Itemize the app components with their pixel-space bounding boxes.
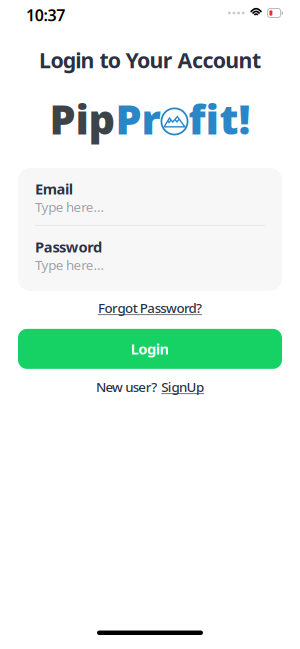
staticText: Pip — [49, 91, 115, 146]
staticText: Email — [35, 179, 73, 199]
staticText: 10:37 — [26, 4, 65, 26]
button[interactable]: Forgot Password? — [98, 302, 202, 314]
staticText: Password — [35, 237, 102, 257]
staticText: fit! — [188, 91, 250, 146]
staticText: Forgot Password? — [98, 299, 202, 317]
button[interactable]: SignUp — [161, 381, 204, 393]
staticText: Type here... — [35, 198, 105, 216]
button[interactable]: Email, Type here — [35, 201, 265, 213]
staticText: SignUp — [161, 378, 204, 396]
staticText: Login to Your Account — [39, 46, 261, 74]
staticText: Pr — [115, 91, 160, 146]
staticText: New user? — [96, 378, 157, 396]
button[interactable]: Login — [18, 329, 282, 369]
staticText: Login — [131, 339, 169, 359]
staticText: Type here... — [35, 256, 105, 274]
button[interactable]: Password, Type here — [35, 259, 265, 271]
